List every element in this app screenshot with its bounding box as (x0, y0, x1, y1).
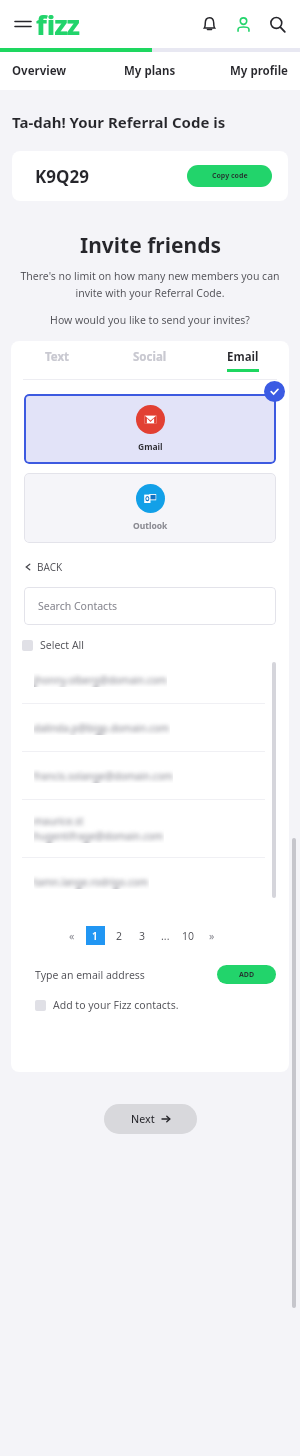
staticText: Social (133, 349, 167, 365)
button[interactable]: jhonny.olberg@domain.com (22, 656, 265, 703)
staticText: My plans (124, 63, 176, 79)
button[interactable]: » (203, 926, 220, 945)
staticText: Email (227, 349, 259, 365)
button[interactable]: Profile (230, 11, 256, 37)
button[interactable]: tamn.lange.rodrigo.com (22, 858, 265, 905)
staticText: fizz (36, 6, 80, 43)
staticText: 3 (139, 929, 146, 943)
button[interactable]: ADD (217, 965, 276, 984)
staticText: My profile (230, 63, 288, 79)
button[interactable]: francis.solange@domain.com (22, 752, 265, 799)
button[interactable]: Selected (264, 381, 285, 402)
button[interactable]: Gmail (24, 394, 276, 464)
staticText: Ta-dah! Your Referral Code is (12, 112, 226, 132)
staticText: ... (161, 929, 170, 943)
button[interactable]: Search (264, 11, 290, 37)
staticText: How would you like to send your invites? (50, 313, 250, 327)
button[interactable]: Search Contacts (24, 587, 276, 625)
staticText: ADD (239, 970, 255, 980)
staticText: Search Contacts (38, 599, 117, 613)
staticText: Next (131, 1112, 155, 1126)
button[interactable]: 2 (111, 926, 128, 945)
button[interactable]: fizz (36, 6, 80, 43)
staticText: There's no limit on how many new members… (10, 269, 290, 300)
staticText: Overview (12, 63, 67, 79)
staticText: Gmail (138, 441, 163, 453)
button[interactable]: Text (11, 349, 103, 369)
button[interactable]: Menu (8, 9, 38, 39)
staticText: » (209, 929, 215, 943)
button[interactable]: Email (196, 349, 289, 372)
button[interactable]: Outlook (24, 473, 276, 543)
button[interactable]: Add to your Fizz contacts. (35, 998, 179, 1012)
button[interactable]: My profile (200, 52, 300, 90)
button[interactable]: Overview (0, 52, 100, 90)
staticText: Copy code (212, 171, 248, 181)
staticText: jhonny.olberg@domain.com (34, 673, 167, 687)
button[interactable]: dalinda.p@bigp.domain.com (22, 704, 265, 751)
button[interactable]: maurice.st hugentifrage@domain.com (22, 800, 265, 857)
staticText: 2 (116, 929, 123, 943)
button[interactable]: ... (157, 926, 174, 945)
staticText: Text (45, 349, 70, 365)
staticText: Type an email address (35, 968, 145, 982)
button[interactable]: Social (103, 349, 196, 369)
button[interactable]: Select All (22, 638, 85, 652)
button[interactable]: Notifications (196, 11, 222, 37)
button[interactable]: Copy code (187, 165, 272, 187)
button[interactable]: BACK (24, 560, 63, 574)
staticText: tamn.lange.rodrigo.com (34, 875, 149, 889)
staticText: 1 (92, 929, 99, 943)
staticText: francis.solange@domain.com (34, 769, 173, 783)
button[interactable]: 3 (134, 926, 151, 945)
staticText: BACK (37, 560, 63, 574)
staticText: K9Q29 (35, 165, 89, 188)
staticText: « (69, 929, 75, 943)
staticText: Invite friends (80, 231, 221, 260)
button[interactable]: 10 (180, 926, 197, 945)
staticText: maurice.st hugentifrage@domain.com (34, 814, 164, 843)
staticText: Select All (40, 638, 85, 652)
staticText: Add to your Fizz contacts. (53, 998, 179, 1012)
button[interactable]: « (63, 926, 80, 945)
button[interactable]: 1 (86, 926, 105, 945)
staticText: 10 (182, 929, 195, 943)
staticText: dalinda.p@bigp.domain.com (34, 721, 170, 735)
staticText: Outlook (133, 520, 168, 532)
button[interactable]: My plans (100, 52, 200, 90)
button[interactable]: Next (104, 1104, 197, 1134)
